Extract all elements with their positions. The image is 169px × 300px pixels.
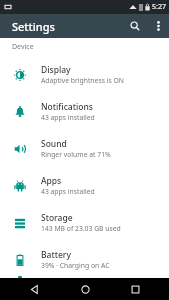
staticText: Storage [41,212,73,224]
staticText: 43 apps installed [41,113,95,122]
button[interactable]: More options [147,15,169,37]
button[interactable]: Home [68,278,102,300]
staticText: 5:27 [152,2,166,12]
staticText: 43 apps installed [41,187,95,196]
button[interactable]: Battery [0,241,169,278]
staticText: Display [41,64,71,76]
staticText: Ringer volume at 71% [41,150,111,159]
button[interactable]: Back [17,278,51,300]
button[interactable]: Notifications [0,93,169,130]
staticText: Apps [41,175,62,187]
staticText: Sound [41,138,67,150]
button[interactable]: Recent apps [118,278,152,300]
staticText: Adaptive brightness is ON [41,76,124,85]
staticText: Battery [41,249,71,261]
staticText: Settings [12,19,55,34]
staticText: Notifications [41,101,93,113]
button[interactable]: Apps [0,167,169,204]
button[interactable]: Display [0,56,169,93]
button[interactable]: Sound [0,130,169,167]
button[interactable]: Search [123,14,147,38]
staticText: 39% · Charging on AC [41,261,110,270]
staticText: Device [12,42,34,52]
button[interactable]: Storage [0,204,169,241]
staticText: 143 MB of 23.03 GB used [41,224,121,233]
